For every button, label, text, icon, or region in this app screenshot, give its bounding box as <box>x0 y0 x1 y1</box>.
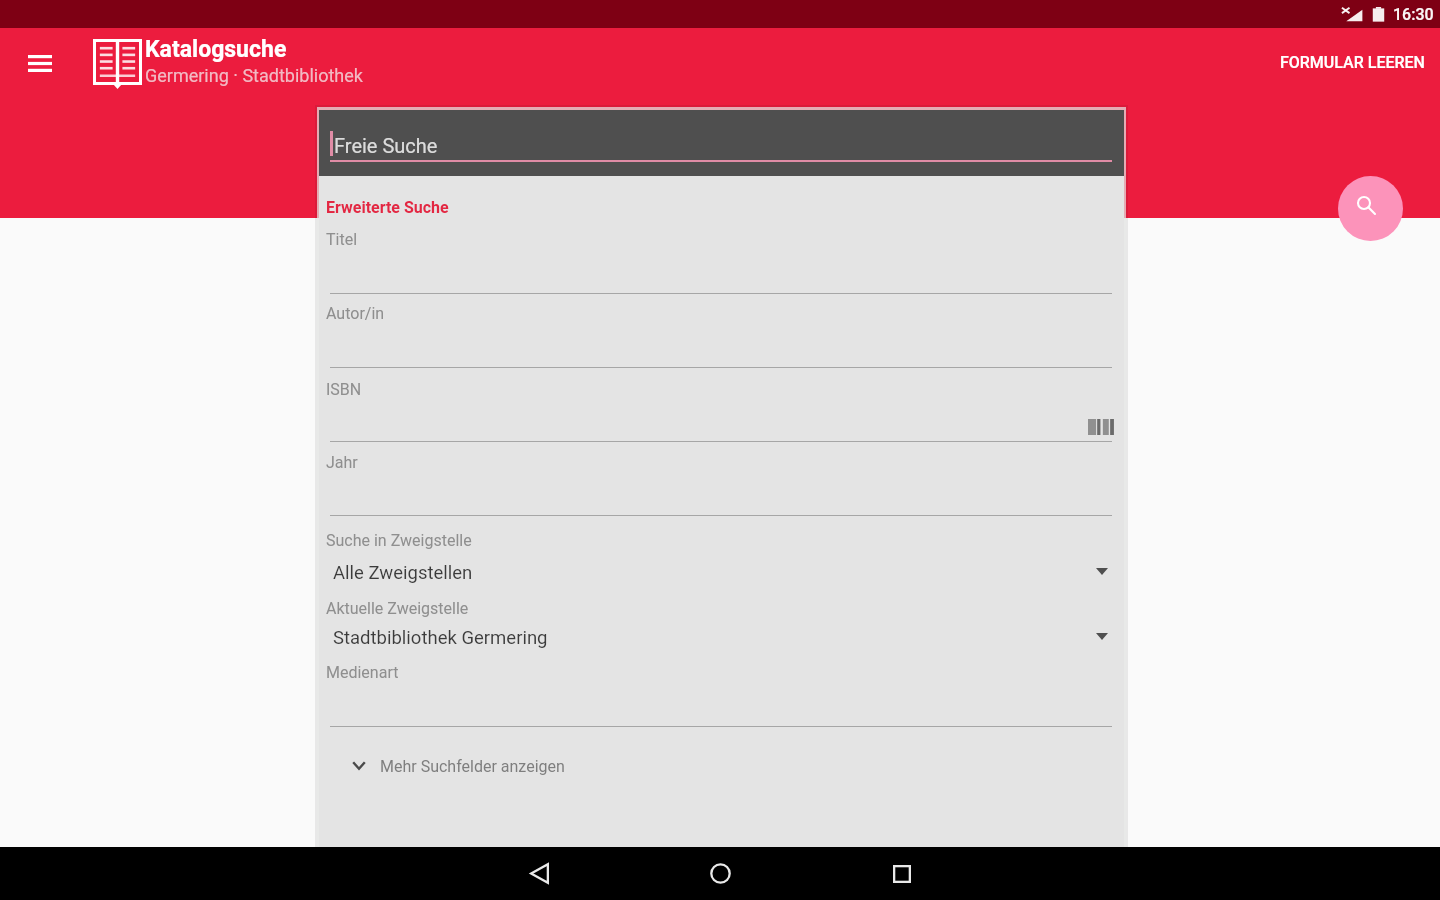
button[interactable]: Home <box>684 847 756 900</box>
staticText: ISBN <box>326 380 362 399</box>
staticText: Erweiterte Suche <box>326 198 449 217</box>
button[interactable]: Open navigation menu <box>18 41 62 85</box>
staticText: Jahr <box>326 453 358 472</box>
button[interactable] <box>319 592 1124 652</box>
staticText: Freie Suche <box>334 134 438 157</box>
button[interactable] <box>319 654 1124 734</box>
button[interactable] <box>319 371 1124 449</box>
button[interactable]: Back <box>503 847 575 900</box>
button[interactable]: Recent apps <box>866 847 938 900</box>
button[interactable]: FORMULAR LEEREN <box>1264 43 1440 82</box>
button[interactable]: Search <box>1338 176 1403 241</box>
button[interactable] <box>319 524 1124 584</box>
button[interactable] <box>319 444 1124 523</box>
staticText: 16:30 <box>1393 5 1434 24</box>
staticText: Suche in Zweigstelle <box>326 531 472 550</box>
staticText: Titel <box>326 230 358 249</box>
staticText: Katalogsuche <box>145 36 287 63</box>
staticText: Aktuelle Zweigstelle <box>326 599 469 618</box>
staticText: Autor/in <box>326 304 385 323</box>
staticText: Germering · Stadtbibliothek <box>145 65 363 86</box>
staticText: Medienart <box>326 663 399 682</box>
button[interactable] <box>319 295 1124 375</box>
staticText: Mehr Suchfelder anzeigen <box>380 757 565 776</box>
button[interactable] <box>319 221 1124 301</box>
staticText: Stadtbibliothek Germering <box>333 627 548 649</box>
staticText: Alle Zweigstellen <box>333 562 473 584</box>
button[interactable] <box>344 748 584 784</box>
staticText: FORMULAR LEEREN <box>1280 53 1425 72</box>
